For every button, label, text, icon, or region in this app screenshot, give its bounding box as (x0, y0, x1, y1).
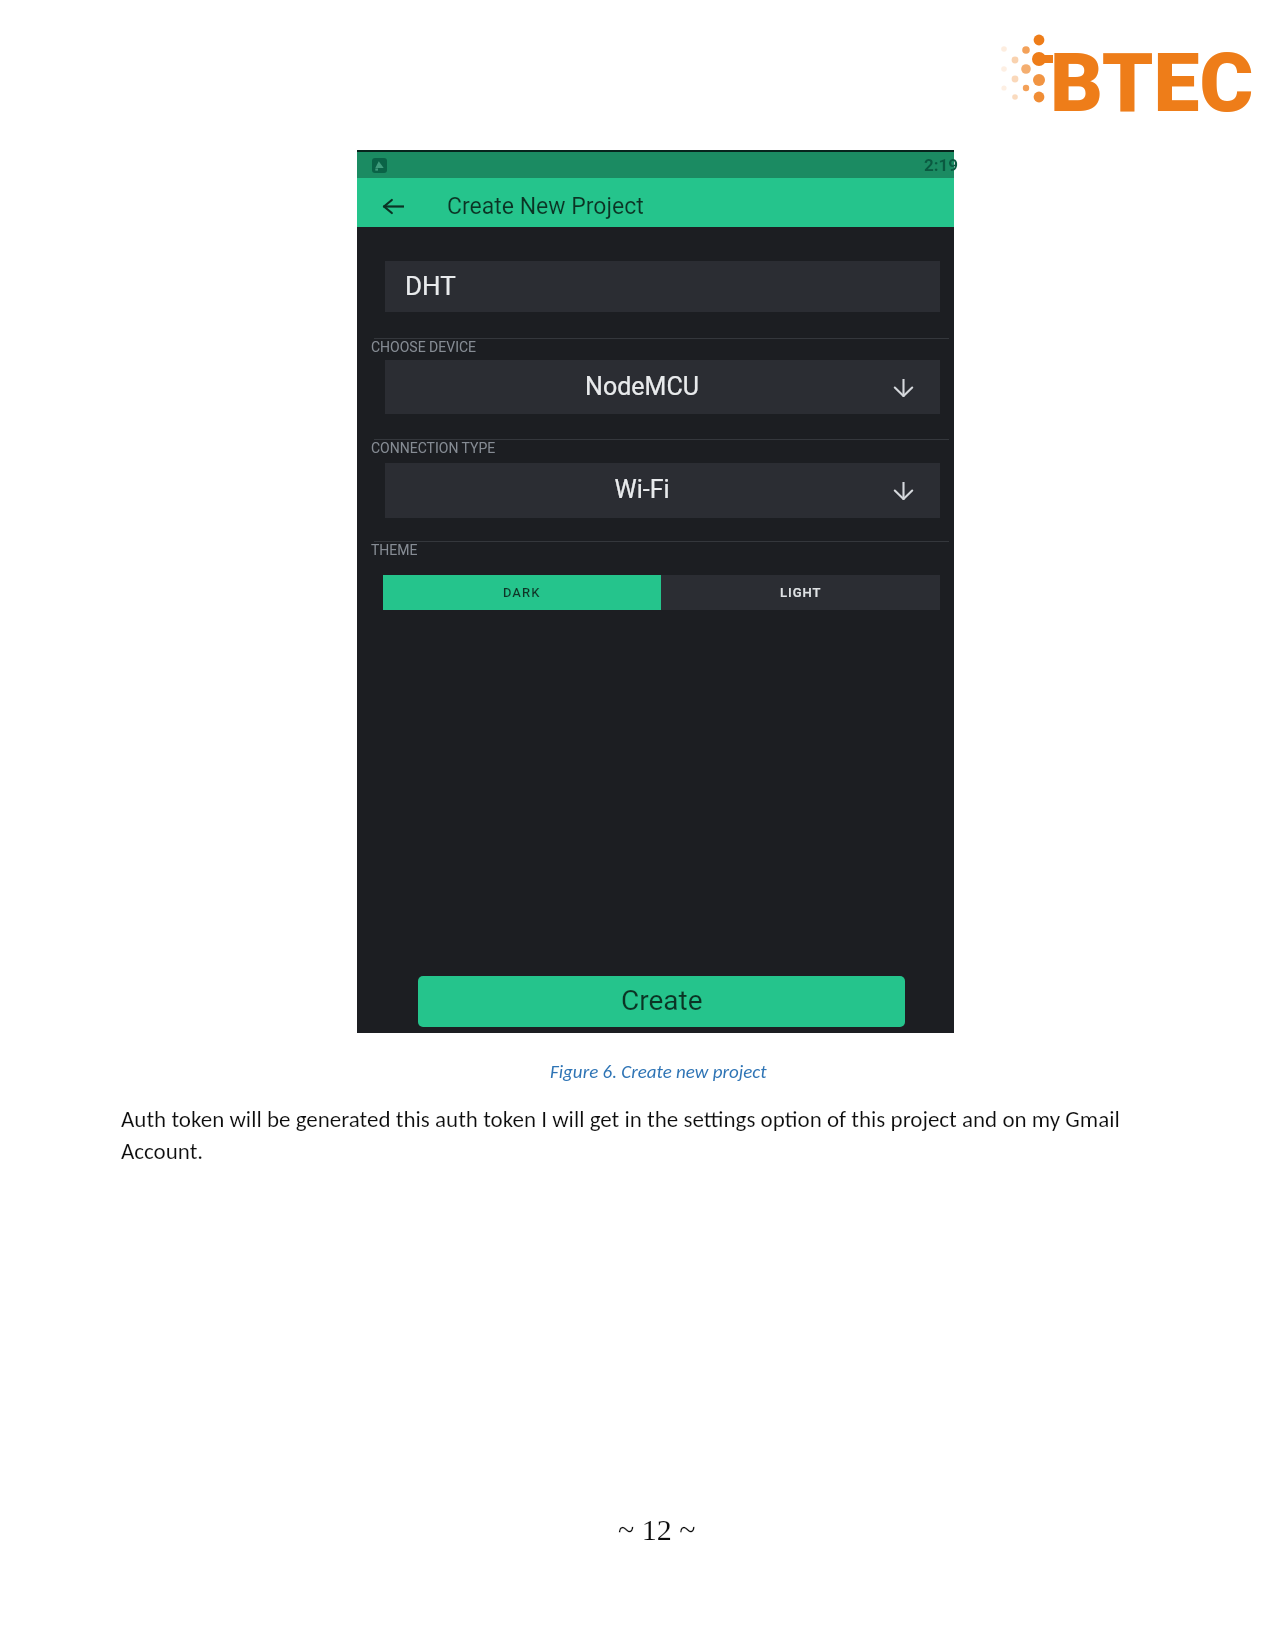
staticText: DARK (503, 585, 541, 600)
staticText: Wi-Fi (385, 475, 899, 504)
button[interactable]: LIGHT (661, 575, 940, 610)
staticText: NodeMCU (385, 372, 899, 401)
button[interactable]: Back (371, 178, 415, 227)
button[interactable]: DHT (385, 261, 940, 312)
staticText: LIGHT (780, 585, 822, 600)
staticText: Figure 6. Create new project (550, 1060, 767, 1083)
button[interactable]: Create (418, 976, 905, 1027)
button[interactable]: DARK (383, 575, 661, 610)
staticText: DHT (405, 271, 456, 301)
staticText: Create New Project (447, 193, 644, 220)
staticText: CONNECTION TYPE (371, 440, 496, 456)
staticText: 2:19 (924, 155, 959, 175)
staticText: CHOOSE DEVICE (371, 339, 477, 355)
staticText: THEME (371, 542, 418, 558)
staticText: BTEC (1050, 35, 1254, 121)
staticText: Create (621, 984, 703, 1017)
button[interactable]: Wi-Fi (385, 463, 940, 518)
button[interactable]: NodeMCU (385, 360, 940, 414)
staticText: ~ 12 ~ (618, 1513, 696, 1546)
staticText: Auth token will be generated this auth t… (121, 1105, 1139, 1165)
